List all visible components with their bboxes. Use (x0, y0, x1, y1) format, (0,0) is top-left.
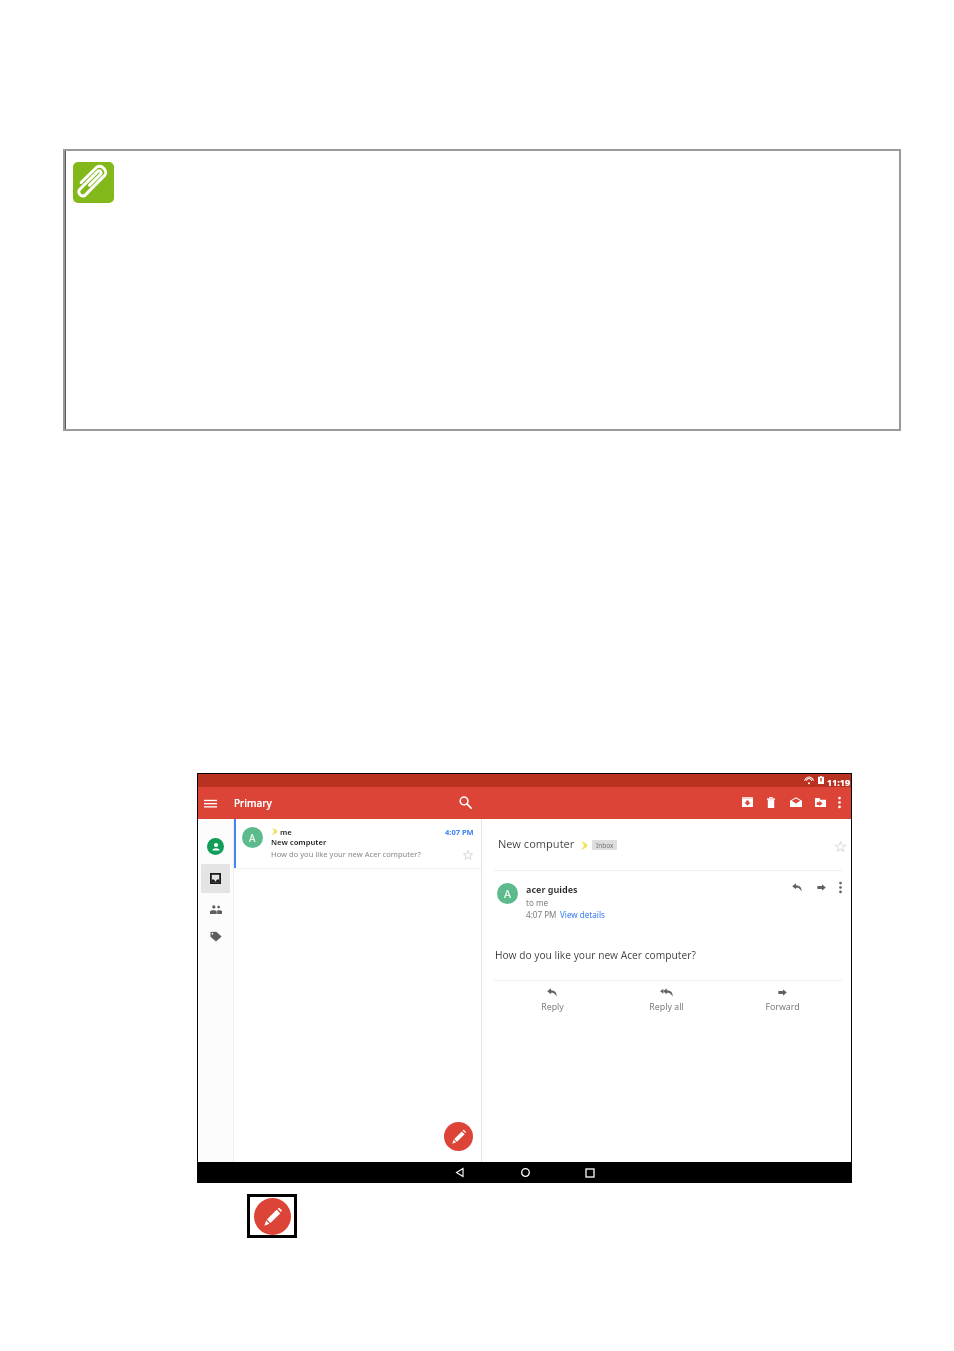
button[interactable]: Labels (201, 922, 230, 951)
staticText: New computer (271, 837, 327, 847)
button[interactable]: Home (502, 1162, 548, 1183)
button[interactable]: Search (454, 791, 476, 813)
staticText: A (249, 831, 256, 845)
staticText: A (504, 886, 512, 901)
staticText: Primary (234, 796, 272, 810)
staticText: 4:07 PM (445, 827, 474, 837)
button[interactable]: Mark as unread (785, 791, 807, 813)
staticText: Inbox (596, 841, 614, 850)
button[interactable]: More options (831, 878, 849, 896)
staticText: Forward (765, 1001, 800, 1013)
staticText: New computer (498, 836, 575, 851)
button[interactable]: Social (201, 895, 230, 924)
staticText: How do you like your new Acer computer? (495, 948, 696, 962)
button[interactable]: A (234, 819, 481, 868)
button[interactable]: Inbox (201, 864, 230, 893)
staticText: to me (526, 897, 549, 908)
staticText: me (280, 827, 292, 837)
staticText: Reply all (649, 1001, 684, 1013)
staticText: How do you like your new Acer computer? (271, 849, 421, 859)
button[interactable]: Recent apps (567, 1162, 613, 1183)
button[interactable]: Forward (812, 878, 830, 896)
button[interactable]: Reply (788, 878, 806, 896)
button[interactable]: Reply (522, 987, 582, 1013)
button[interactable]: Star (459, 846, 477, 864)
button[interactable]: Account (207, 838, 224, 855)
button[interactable]: Archive (736, 791, 758, 813)
staticText: acer guides (526, 883, 578, 895)
button[interactable]: Reply all (636, 987, 696, 1013)
button[interactable]: Forward (752, 987, 812, 1013)
staticText: 11:19 (827, 776, 851, 788)
button[interactable]: Back (437, 1162, 483, 1183)
button[interactable]: More options (828, 791, 850, 813)
button[interactable]: Delete (760, 791, 782, 813)
staticText: Reply (541, 1001, 564, 1013)
button[interactable]: Move to (809, 791, 831, 813)
button[interactable]: View details (560, 909, 605, 920)
staticText: 4:07 PM (526, 909, 557, 920)
button[interactable]: Open navigation drawer (200, 793, 220, 813)
button[interactable]: Star (831, 837, 849, 855)
button[interactable]: Compose (444, 1122, 473, 1151)
